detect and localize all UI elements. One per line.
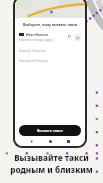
button[interactable]: Домой: [48, 139, 53, 144]
staticText: Иван Иванов: [26, 32, 48, 36]
button[interactable]: Иван Иванов: [19, 32, 81, 42]
staticText: Заказать поездку другу: [19, 38, 53, 42]
button[interactable]: Профиль: [74, 34, 81, 41]
staticText: Выберите, кому вызвать такси: [19, 22, 81, 27]
button[interactable]: Назад: [29, 139, 34, 144]
button[interactable]: Недавние: [66, 139, 71, 144]
button[interactable]: Вызвать такси: [19, 125, 81, 136]
button[interactable]: Алексей Смирнов: [19, 47, 81, 55]
staticText: родным и близким: [10, 164, 93, 175]
staticText: Екатерина Петрова: [19, 59, 48, 63]
staticText: Алексей Смирнов: [19, 49, 46, 53]
other: Меню: [68, 35, 72, 39]
staticText: Вызвать такси: [37, 128, 63, 133]
button[interactable]: Екатерина Петрова: [19, 57, 81, 65]
staticText: Вызывайте такси: [14, 152, 89, 163]
